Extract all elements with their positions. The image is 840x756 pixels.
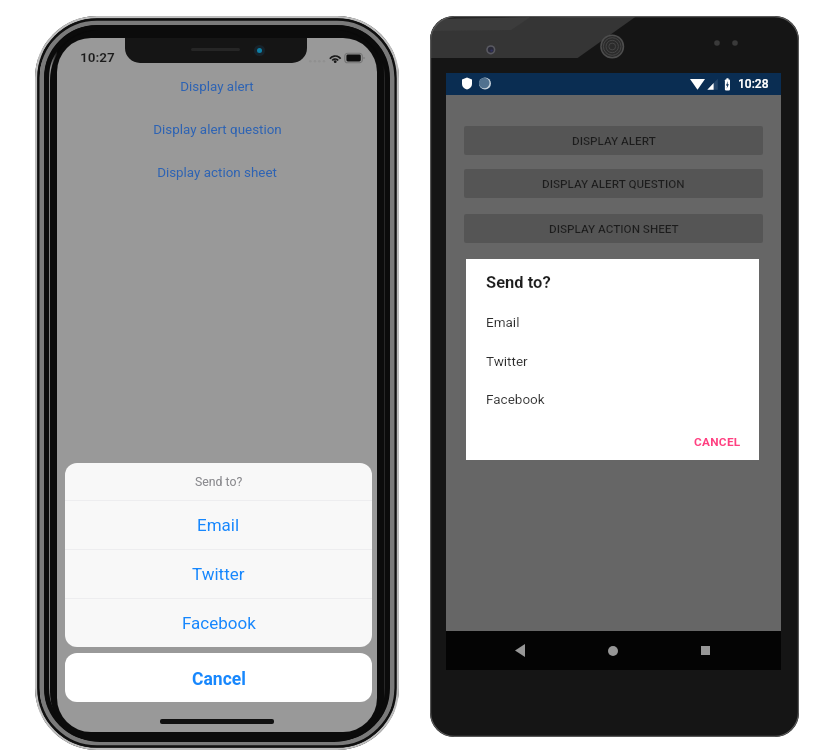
button[interactable]: Email (466, 312, 759, 332)
button[interactable]: Twitter (65, 550, 372, 598)
staticText: Twitter (192, 564, 245, 584)
staticText: Facebook (486, 391, 545, 407)
staticText: Display alert question (153, 122, 282, 138)
button[interactable]: Display alert (57, 76, 377, 98)
staticText: Twitter (486, 353, 528, 369)
staticText: Send to? (486, 273, 551, 292)
button[interactable]: Recent apps (685, 631, 725, 670)
staticText: Cancel (192, 669, 246, 690)
button[interactable]: DISPLAY ALERT QUESTION (464, 169, 763, 198)
staticText: DISPLAY ACTION SHEET (549, 222, 679, 236)
staticText: Display action sheet (157, 165, 277, 181)
staticText: DISPLAY ALERT QUESTION (542, 177, 685, 191)
button[interactable]: Home (593, 631, 633, 670)
button[interactable]: Cancel (65, 653, 372, 702)
button[interactable]: Email (65, 501, 372, 549)
button[interactable]: CANCEL (688, 430, 747, 454)
button[interactable]: Facebook (65, 599, 372, 647)
staticText: Email (197, 515, 240, 535)
staticText: Display alert (180, 79, 254, 95)
button[interactable]: Back (500, 631, 540, 670)
staticText: 10:28 (738, 77, 769, 91)
staticText: 10:27 (80, 49, 115, 65)
staticText: DISPLAY ALERT (572, 134, 656, 148)
button[interactable]: Facebook (466, 389, 759, 409)
button[interactable]: DISPLAY ACTION SHEET (464, 214, 763, 243)
button[interactable]: DISPLAY ALERT (464, 126, 763, 155)
button[interactable]: Display action sheet (57, 162, 377, 184)
staticText: Facebook (182, 613, 256, 633)
staticText: CANCEL (694, 435, 741, 449)
button[interactable]: Display alert question (57, 119, 377, 141)
staticText: Email (486, 314, 520, 330)
button[interactable]: Twitter (466, 351, 759, 371)
staticText: Send to? (195, 475, 243, 489)
